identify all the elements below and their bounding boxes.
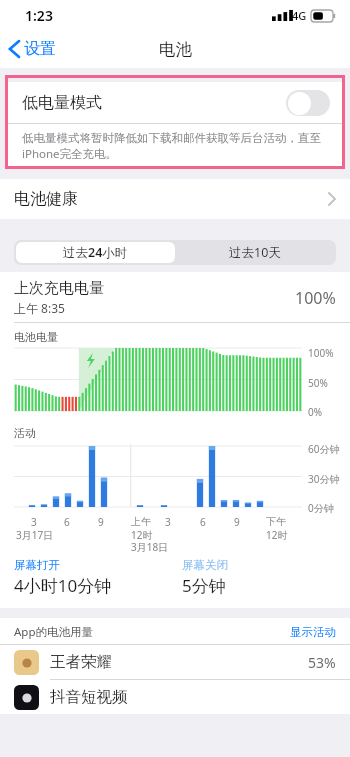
staticText: 100% [295,287,336,309]
staticText: 显示活动 [290,625,336,639]
staticText: 上午 8:35 [14,300,65,316]
button[interactable]: 电池健康 [0,179,350,219]
button[interactable]: 王者荣耀 [0,645,350,679]
staticText: 3 [165,515,171,529]
staticText: 过去10天 [229,244,281,261]
staticText: 5分钟 [182,574,226,597]
staticText: 3 [31,515,37,529]
staticText: 100% [308,346,334,360]
staticText: 9 [234,515,240,529]
button[interactable]: 低电量模式开关 [286,90,330,116]
button[interactable]: 低电量模式 [8,82,342,123]
staticText: 53% [308,653,336,672]
staticText: 9 [98,515,104,529]
staticText: 12时 [131,528,153,542]
staticText: 12时 [266,528,288,542]
button[interactable]: 显示活动 [290,625,336,639]
staticText: 电池 [159,39,192,60]
staticText: App的电池用量 [14,624,290,640]
staticText: 电池健康 [14,189,328,209]
staticText: 6 [200,515,206,529]
staticText: 50% [308,376,328,390]
staticText: 0% [308,405,323,419]
staticText: 上次充电电量 [14,279,104,298]
staticText: 设置 [24,39,56,59]
staticText: 王者荣耀 [50,652,308,672]
staticText: 过去24小时 [63,244,128,261]
button[interactable]: 过去10天 [175,242,334,263]
staticText: 3月17日 [16,528,54,542]
staticText: 上午 [131,515,151,528]
button[interactable]: 抖音短视频 [0,680,350,714]
staticText: 1:23 [25,6,53,25]
staticText: 30分钟 [308,472,340,486]
staticText: 抖音短视频 [50,687,336,707]
staticText: 屏幕打开 [14,558,60,572]
staticText: 60分钟 [308,442,340,456]
staticText: 下午 [266,515,286,528]
staticText: 低电量模式 [22,93,286,113]
staticText: 3月18日 [131,540,169,554]
staticText: 0分钟 [308,501,334,515]
button[interactable]: 设置 [0,35,66,63]
staticText: 6 [64,515,70,529]
staticText: 低电量模式将暂时降低如下载和邮件获取等后台活动，直至 iPhone完全充电。 [22,131,321,161]
staticText: 电池电量 [14,330,58,344]
staticText: 活动 [14,426,36,440]
staticText: 4小时10分钟 [14,574,112,597]
staticText: 4G [292,8,307,23]
button[interactable]: 过去24小时 [16,242,175,263]
staticText: 屏幕关闭 [182,558,228,572]
